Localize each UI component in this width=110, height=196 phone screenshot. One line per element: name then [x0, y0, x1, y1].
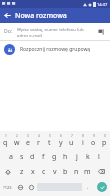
- button[interactable]: n: [71, 164, 82, 179]
- staticText: 5: [49, 134, 51, 138]
- button[interactable]: 5: [44, 132, 55, 149]
- button[interactable]: 6: [55, 132, 66, 149]
- staticText: 7: [71, 134, 73, 138]
- staticText: l: [98, 152, 100, 162]
- button[interactable]: Wstecz: [0, 8, 15, 23]
- staticText: z: [20, 167, 24, 177]
- button[interactable]: j: [71, 149, 82, 164]
- button[interactable]: Enter: [93, 179, 110, 195]
- staticText: Rozpocznij rozmowę grupową: [20, 46, 91, 53]
- staticText: w: [14, 138, 20, 148]
- button[interactable]: 3: [22, 132, 33, 149]
- staticText: 2: [16, 134, 18, 138]
- button[interactable]: ?123: [0, 179, 15, 195]
- staticText: 8: [82, 134, 84, 138]
- staticText: j: [76, 152, 78, 162]
- button[interactable]: Emoji: [26, 179, 37, 195]
- button[interactable]: d: [27, 149, 38, 164]
- button[interactable]: g: [49, 149, 60, 164]
- button[interactable]: h: [60, 149, 71, 164]
- button[interactable]: b: [60, 164, 71, 179]
- staticText: s: [20, 152, 24, 162]
- staticText: k: [86, 152, 90, 162]
- staticText: y: [59, 138, 63, 148]
- staticText: 9: [93, 134, 95, 138]
- staticText: .: [87, 183, 89, 191]
- button[interactable]: s: [16, 149, 27, 164]
- button[interactable]: Backspace: [93, 164, 110, 179]
- staticText: e: [26, 138, 30, 148]
- staticText: m: [84, 167, 91, 177]
- button[interactable]: Język: [15, 179, 26, 195]
- staticText: t: [48, 138, 51, 148]
- staticText: c: [42, 167, 46, 177]
- staticText: v: [53, 167, 57, 177]
- button[interactable]: x: [27, 164, 38, 179]
- button[interactable]: 0: [99, 132, 110, 149]
- button[interactable]: 8: [77, 132, 88, 149]
- staticText: 14:37: [97, 2, 108, 7]
- staticText: 4: [38, 134, 40, 138]
- staticText: b: [63, 167, 68, 177]
- button[interactable]: Rozpocznij rozmowę grupową: [0, 41, 110, 58]
- staticText: Nowa rozmowa: [15, 11, 67, 21]
- button[interactable]: l: [93, 149, 104, 164]
- button[interactable]: 7: [66, 132, 77, 149]
- staticText: Wpisz osobę, numer telefonu lub adres e-…: [17, 26, 95, 38]
- button[interactable]: c: [38, 164, 49, 179]
- button[interactable]: 1: [0, 132, 11, 149]
- button[interactable]: .: [82, 179, 93, 195]
- staticText: 0: [104, 134, 106, 138]
- staticText: 1: [5, 134, 7, 138]
- button[interactable]: k: [82, 149, 93, 164]
- button[interactable]: f: [38, 149, 49, 164]
- staticText: a: [9, 152, 13, 162]
- staticText: f: [42, 152, 45, 162]
- button[interactable]: 9: [88, 132, 99, 149]
- staticText: x: [31, 167, 35, 177]
- button[interactable]: v: [49, 164, 60, 179]
- button[interactable]: z: [16, 164, 27, 179]
- button[interactable]: 4: [33, 132, 44, 149]
- staticText: p: [102, 138, 107, 148]
- staticText: g: [52, 152, 57, 162]
- staticText: 3: [27, 134, 29, 138]
- staticText: n: [74, 167, 79, 177]
- button[interactable]: a: [5, 149, 16, 164]
- staticText: o: [91, 138, 96, 148]
- staticText: h: [63, 152, 68, 162]
- staticText: u: [69, 138, 74, 148]
- staticText: 6: [60, 134, 62, 138]
- staticText: i: [82, 138, 84, 148]
- staticText: Do:: [4, 28, 13, 35]
- staticText: ?123: [3, 185, 12, 190]
- staticText: r: [37, 138, 40, 148]
- staticText: d: [30, 152, 35, 162]
- button[interactable]: m: [82, 164, 93, 179]
- button[interactable]: Wybierz kontakt: [95, 26, 106, 37]
- staticText: q: [3, 138, 8, 148]
- button[interactable]: 2: [11, 132, 22, 149]
- button[interactable]: Shift: [0, 164, 16, 179]
- button[interactable]: Do:: [0, 23, 110, 40]
